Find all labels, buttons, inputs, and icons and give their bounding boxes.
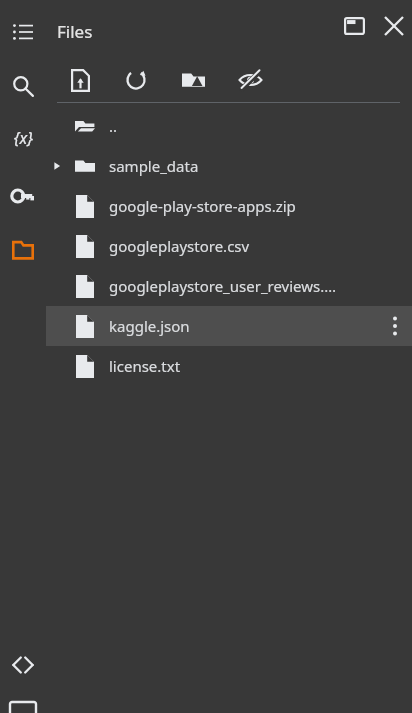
button[interactable]: Secrets — [0, 186, 46, 206]
staticText: google-play-store-apps.zip — [109, 196, 402, 216]
button[interactable]: Table of contents — [0, 22, 46, 42]
button[interactable]: Mount Drive — [175, 62, 211, 98]
button[interactable]: Files — [0, 239, 46, 261]
button[interactable]: Search — [0, 75, 46, 97]
button[interactable]: Open in new pane — [336, 8, 372, 44]
staticText: .. — [109, 116, 402, 136]
staticText: license.txt — [109, 356, 402, 376]
button[interactable]: Refresh — [118, 62, 154, 98]
button[interactable]: Close — [376, 8, 412, 44]
button[interactable]: Variables — [0, 126, 46, 150]
button[interactable]: sample_data — [46, 146, 412, 186]
staticText: kaggle.json — [109, 316, 378, 336]
button[interactable]: license.txt — [46, 346, 412, 386]
button[interactable]: Upload to session storage — [62, 62, 98, 98]
button[interactable]: googleplaystore_user_reviews.… — [46, 266, 412, 306]
button[interactable]: Code snippets — [0, 654, 46, 676]
staticText: googleplaystore_user_reviews.… — [109, 276, 402, 296]
button[interactable]: More options — [378, 306, 412, 346]
staticText: sample_data — [109, 156, 402, 176]
staticText: Files — [57, 20, 93, 43]
button[interactable]: .. — [46, 106, 412, 146]
button[interactable]: kaggle.json — [46, 306, 412, 346]
button[interactable]: Show hidden files — [232, 62, 268, 98]
button[interactable]: google-play-store-apps.zip — [46, 186, 412, 226]
staticText: {x} — [14, 127, 33, 149]
button[interactable]: googleplaystore.csv — [46, 226, 412, 266]
staticText: googleplaystore.csv — [109, 236, 402, 256]
